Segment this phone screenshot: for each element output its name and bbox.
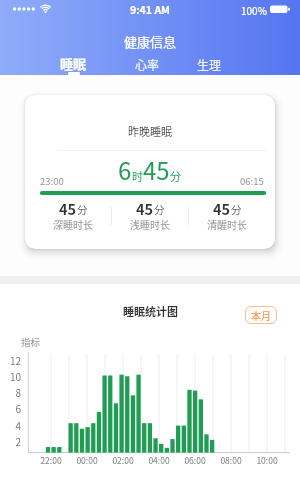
staticText: 10:00 [253, 454, 281, 466]
staticText: 10 [0, 369, 21, 383]
button[interactable]: 45 [189, 198, 265, 233]
staticText: 指标 [21, 335, 41, 349]
staticText: 健康信息 [124, 32, 177, 51]
staticText: 时 [132, 168, 143, 184]
staticText: 浅睡时长 [130, 217, 170, 231]
staticText: 睡眠 [60, 54, 87, 73]
staticText: 06:15 [240, 174, 264, 188]
staticText: 08:00 [217, 454, 245, 466]
button[interactable]: 45 [35, 198, 111, 233]
staticText: 45 [136, 198, 154, 219]
button[interactable]: 睡眠 [57, 52, 90, 75]
staticText: 心率 [135, 56, 160, 73]
staticText: 9:41 AM [130, 2, 171, 17]
button[interactable]: 生理 [194, 54, 225, 75]
staticText: 本月 [251, 308, 271, 322]
staticText: 2 [0, 434, 21, 448]
staticText: 8 [0, 385, 21, 399]
button[interactable]: 本月 [245, 306, 277, 324]
staticText: 睡眠统计图 [123, 303, 178, 319]
staticText: 04:00 [145, 454, 173, 466]
staticText: 12 [0, 353, 21, 367]
staticText: 分 [231, 202, 242, 217]
staticText: 23:00 [40, 174, 64, 188]
staticText: 45 [59, 198, 77, 219]
staticText: 02:00 [109, 454, 137, 466]
staticText: 45 [213, 198, 231, 219]
staticText: 4 [0, 418, 21, 432]
staticText: 22:00 [37, 454, 65, 466]
staticText: 分 [154, 202, 165, 217]
staticText: 分 [77, 202, 88, 217]
staticText: 06:00 [181, 454, 209, 466]
staticText: 45 [143, 152, 170, 187]
staticText: 深睡时长 [53, 217, 93, 231]
staticText: 00:00 [73, 454, 101, 466]
staticText: 6 [0, 401, 21, 415]
staticText: 清醒时长 [207, 217, 247, 231]
staticText: 100% [241, 3, 267, 17]
staticText: 6 [118, 152, 132, 187]
staticText: 昨晚睡眠 [128, 123, 172, 139]
button[interactable]: 45 [112, 198, 188, 233]
button[interactable]: 心率 [132, 54, 163, 75]
staticText: 生理 [197, 56, 222, 73]
button[interactable]: 昨晚睡眠 [25, 95, 275, 249]
staticText: 分 [170, 168, 181, 184]
